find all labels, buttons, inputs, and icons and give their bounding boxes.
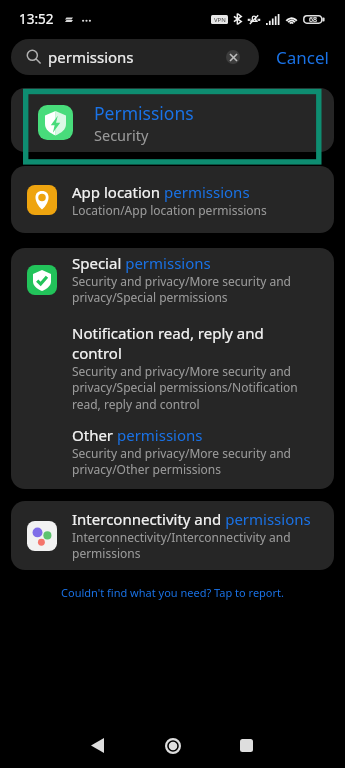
button[interactable]: permissions — [11, 39, 259, 75]
button[interactable]: Other permissions — [11, 413, 334, 489]
staticText: Other permissions — [72, 425, 203, 445]
staticText: Notification read, reply and control — [72, 323, 306, 363]
staticText: 68 — [309, 15, 318, 24]
button[interactable]: Couldn't find what you need? Tap to repo… — [0, 583, 345, 602]
staticText: Couldn't find what you need? Tap to repo… — [61, 585, 284, 600]
staticText: 13:52 — [19, 10, 54, 28]
button[interactable]: Back — [83, 731, 112, 760]
staticText: Special permissions — [72, 253, 211, 273]
button[interactable]: Permissions — [11, 88, 334, 152]
button[interactable]: Clear search — [226, 50, 240, 64]
staticText: Security — [94, 125, 149, 145]
staticText: Permissions — [94, 101, 194, 125]
staticText: Security and privacy/More security and p… — [72, 273, 312, 306]
staticText: Interconnectivity/Interconnectivity and … — [72, 529, 314, 562]
staticText: Interconnectivity and permissions — [72, 509, 311, 529]
button[interactable]: App location permissions — [11, 166, 334, 233]
staticText: Cancel — [276, 46, 329, 69]
button[interactable]: Cancel — [259, 39, 345, 75]
button[interactable]: Interconnectivity and permissions — [11, 501, 334, 570]
button[interactable]: Notification read, reply and control — [11, 306, 334, 413]
staticText: Location/App location permissions — [72, 202, 267, 218]
staticText: Security and privacy/More security and p… — [72, 445, 306, 478]
staticText: App location permissions — [72, 182, 250, 202]
button[interactable]: Home — [158, 731, 187, 760]
staticText: permissions — [48, 47, 226, 67]
button[interactable]: Special permissions — [11, 248, 334, 306]
staticText: Security and privacy/More security and p… — [72, 363, 306, 413]
button[interactable]: Recent apps — [232, 731, 261, 760]
staticText: VPN — [214, 16, 226, 24]
